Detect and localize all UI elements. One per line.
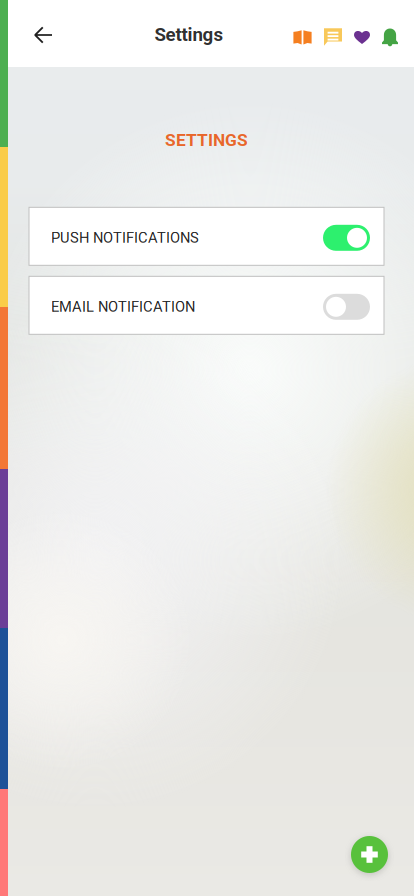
staticText: SETTINGS xyxy=(165,130,248,150)
button[interactable]: PUSH NOTIFICATIONS xyxy=(29,207,384,265)
button[interactable]: EMAIL NOTIFICATION xyxy=(29,276,384,334)
button[interactable]: Library xyxy=(293,20,312,54)
button[interactable]: Back xyxy=(20,13,64,57)
staticText: Settings xyxy=(154,24,223,45)
button[interactable]: Add xyxy=(351,836,388,873)
button[interactable]: Messages xyxy=(324,20,342,54)
button[interactable]: Notifications xyxy=(382,20,398,54)
staticText: EMAIL NOTIFICATION xyxy=(51,298,195,315)
button[interactable]: Favorites xyxy=(354,20,370,54)
staticText: PUSH NOTIFICATIONS xyxy=(51,229,199,246)
